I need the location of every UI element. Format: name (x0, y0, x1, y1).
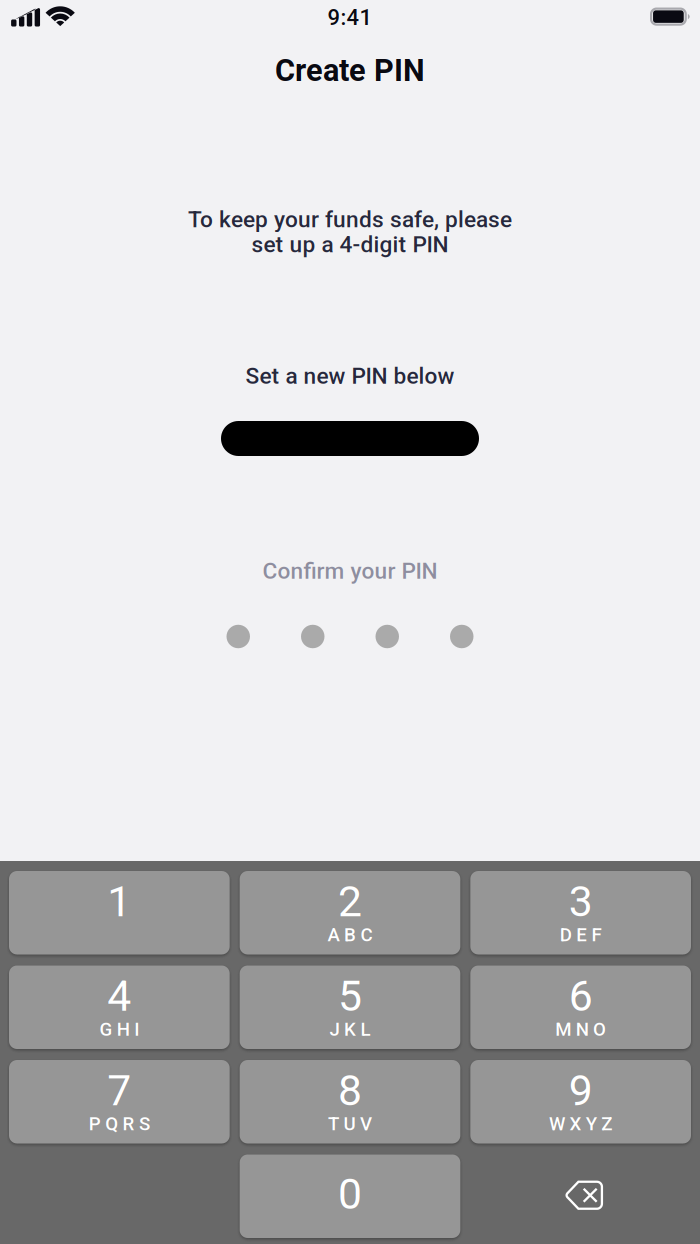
staticText: W (549, 1113, 565, 1135)
staticText: 0 (338, 1169, 362, 1219)
staticText: L (360, 1018, 370, 1040)
staticText: To keep your funds safe, please (188, 206, 512, 233)
staticText: 6 (569, 971, 593, 1021)
staticText: B (344, 924, 356, 946)
staticText: A (328, 924, 340, 946)
staticText: X (569, 1113, 581, 1135)
button[interactable]: 6 (470, 965, 691, 1049)
staticText: set up a 4-digit PIN (251, 231, 448, 258)
button[interactable]: 2 (240, 871, 460, 954)
staticText: M (555, 1018, 571, 1040)
staticText: T (328, 1113, 339, 1135)
staticText: P (89, 1113, 101, 1135)
staticText: 8 (338, 1066, 362, 1116)
staticText: O (593, 1018, 606, 1040)
button[interactable]: 5 (240, 965, 460, 1049)
staticText: F (592, 924, 602, 946)
button[interactable]: 3 (470, 871, 691, 954)
button[interactable]: 4 (9, 965, 230, 1049)
staticText: E (576, 924, 587, 946)
button[interactable]: Delete (470, 1154, 691, 1238)
staticText: D (560, 924, 572, 946)
staticText: 7 (107, 1066, 131, 1116)
button[interactable]: 8 (240, 1060, 460, 1143)
button[interactable]: 0 (240, 1154, 460, 1238)
staticText: 3 (569, 877, 593, 927)
staticText: I (134, 1018, 139, 1040)
staticText: K (344, 1018, 356, 1040)
button[interactable]: 7 (9, 1060, 230, 1143)
staticText: G (99, 1018, 112, 1040)
button[interactable]: 1 (9, 871, 230, 954)
staticText: H (117, 1018, 130, 1040)
button[interactable]: 9 (470, 1060, 691, 1143)
staticText: 4 (107, 971, 131, 1021)
staticText: R (122, 1113, 134, 1135)
staticText: Z (601, 1113, 612, 1135)
staticText: C (360, 924, 372, 946)
staticText: 2 (338, 877, 362, 927)
staticText: 9 (569, 1066, 593, 1116)
staticText: J (330, 1018, 340, 1040)
staticText: N (576, 1018, 589, 1040)
staticText: V (360, 1113, 372, 1135)
staticText: Confirm your PIN (262, 558, 437, 584)
staticText: Create PIN (275, 52, 425, 88)
staticText: 1 (107, 877, 131, 927)
staticText: Q (105, 1113, 118, 1135)
staticText: 9:41 (327, 5, 372, 30)
staticText: S (139, 1113, 150, 1135)
staticText: 5 (338, 971, 362, 1021)
staticText: U (343, 1113, 355, 1135)
staticText: Y (586, 1113, 597, 1135)
staticText: Set a new PIN below (245, 363, 454, 389)
